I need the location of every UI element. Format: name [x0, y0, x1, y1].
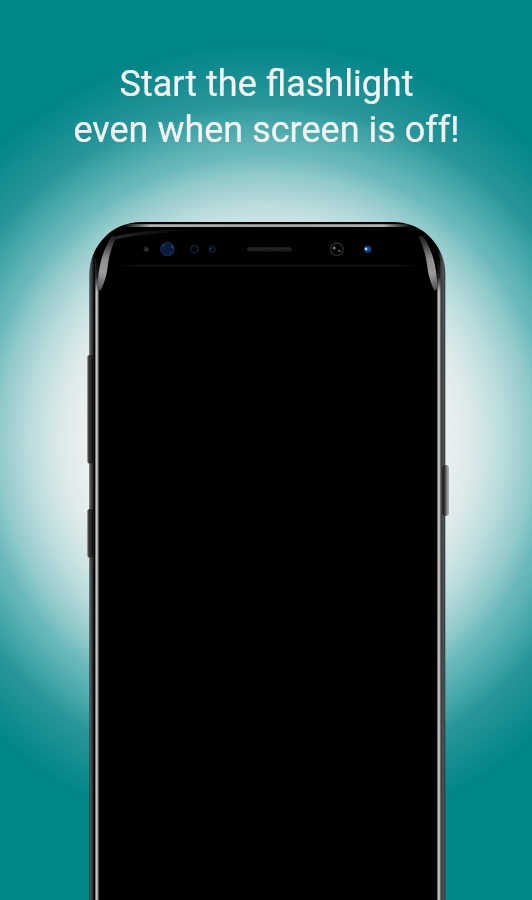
- staticText: Start the flashlight even when screen is…: [73, 63, 460, 151]
